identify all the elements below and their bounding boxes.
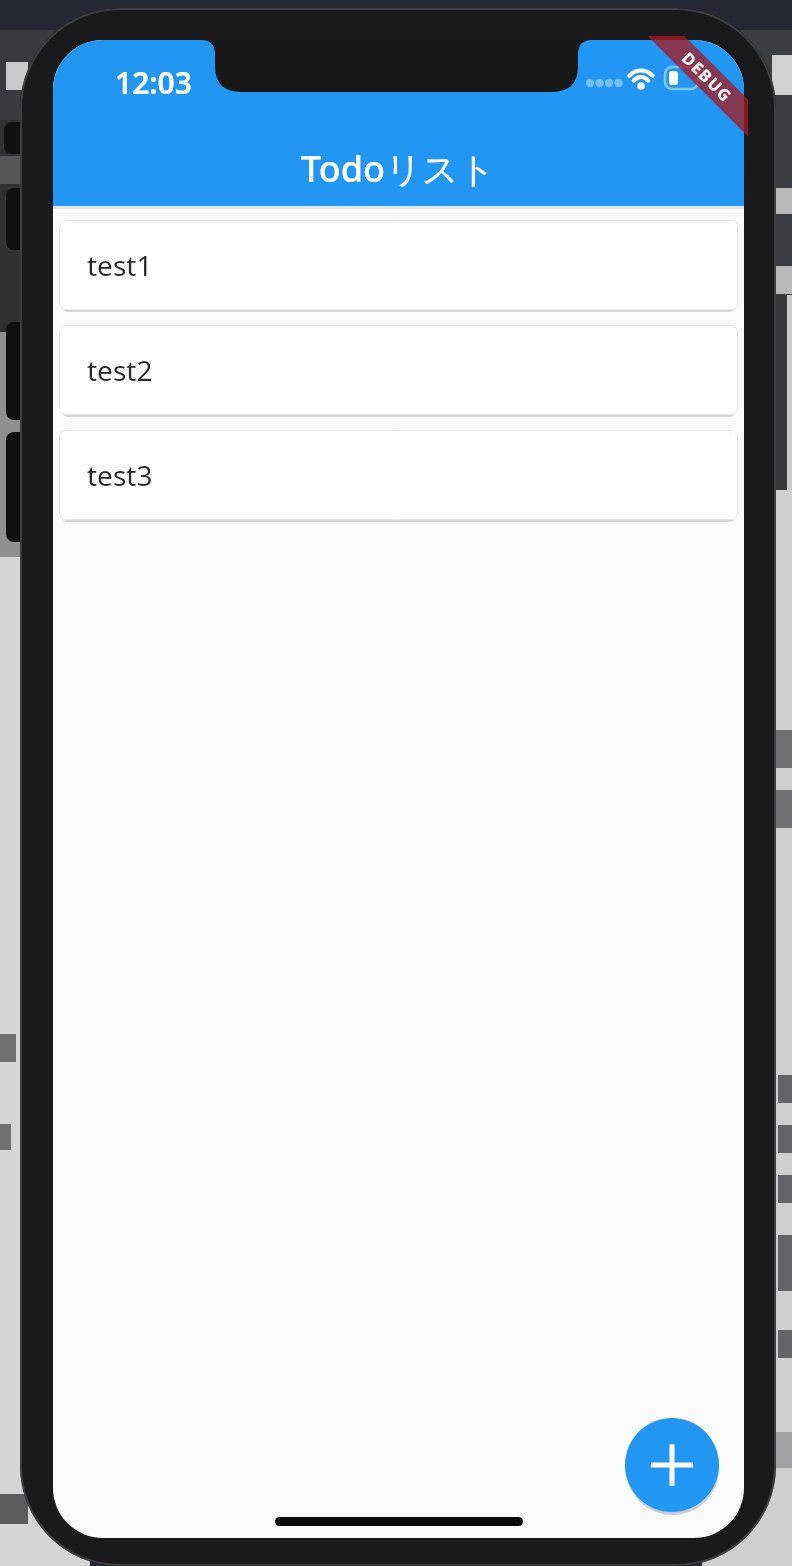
staticText: DEBUG [677,47,737,107]
button[interactable]: test1 [59,220,738,310]
staticText: 12:03 [115,62,192,103]
button[interactable] [625,1418,719,1512]
staticText: test2 [87,351,153,389]
staticText: test3 [87,456,153,494]
staticText: test1 [87,246,153,284]
staticText: Todoリスト [301,144,496,193]
button[interactable]: test3 [59,430,738,520]
button[interactable]: test2 [59,325,738,415]
